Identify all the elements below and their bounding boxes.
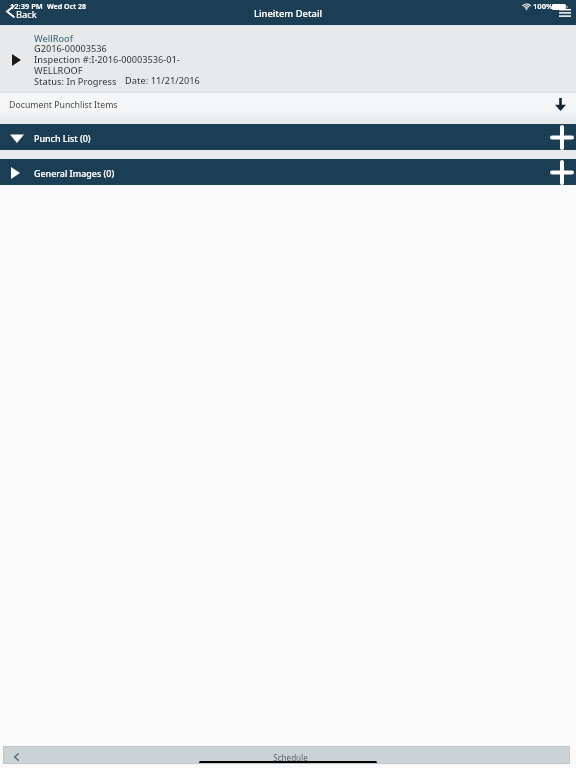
staticText: Wed Oct 28 — [47, 1, 87, 11]
staticText: Back — [16, 8, 37, 21]
button[interactable]: Back — [6, 750, 26, 764]
staticText: Date: 11/21/2016 — [125, 74, 200, 87]
button[interactable]: Punch List (0) — [0, 124, 576, 150]
staticText: 12:39 PM — [10, 1, 43, 11]
button[interactable]: WellRoof G2016-00003536 Inspection #:I-2… — [0, 25, 576, 93]
staticText: General Images (0) — [34, 167, 115, 179]
button[interactable]: Download — [548, 93, 572, 124]
button[interactable]: Document Punchlist Items — [0, 93, 576, 124]
staticText: WellRoof G2016-00003536 Inspection #:I-2… — [34, 32, 180, 88]
staticText: Schedule — [273, 752, 308, 763]
staticText: Document Punchlist Items — [9, 99, 118, 111]
staticText: 100% — [533, 1, 553, 11]
button[interactable]: Add — [548, 159, 576, 185]
staticText: Punch List (0) — [34, 132, 91, 144]
staticText: Lineitem Detail — [254, 7, 322, 20]
button[interactable]: Back — [2, 3, 44, 22]
button[interactable]: Menu — [552, 5, 576, 23]
button[interactable]: General Images (0) — [0, 159, 576, 185]
button[interactable]: Back — [3, 746, 570, 764]
button[interactable]: Add — [548, 124, 576, 150]
